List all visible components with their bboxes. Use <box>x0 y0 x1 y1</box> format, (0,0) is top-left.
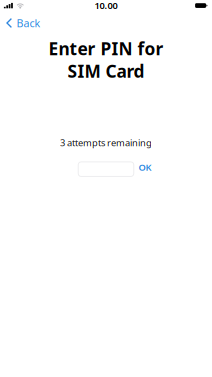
button[interactable]: PIN <box>78 162 134 176</box>
staticText: 3 attempts remaining <box>60 136 152 149</box>
button[interactable]: OK <box>134 162 156 176</box>
staticText: Enter PIN for <box>48 37 163 60</box>
staticText: OK <box>138 161 151 173</box>
staticText: SIM Card <box>67 59 144 82</box>
staticText: Back <box>16 16 40 30</box>
button[interactable]: Back <box>0 12 48 34</box>
staticText: 10.00 <box>94 0 117 11</box>
